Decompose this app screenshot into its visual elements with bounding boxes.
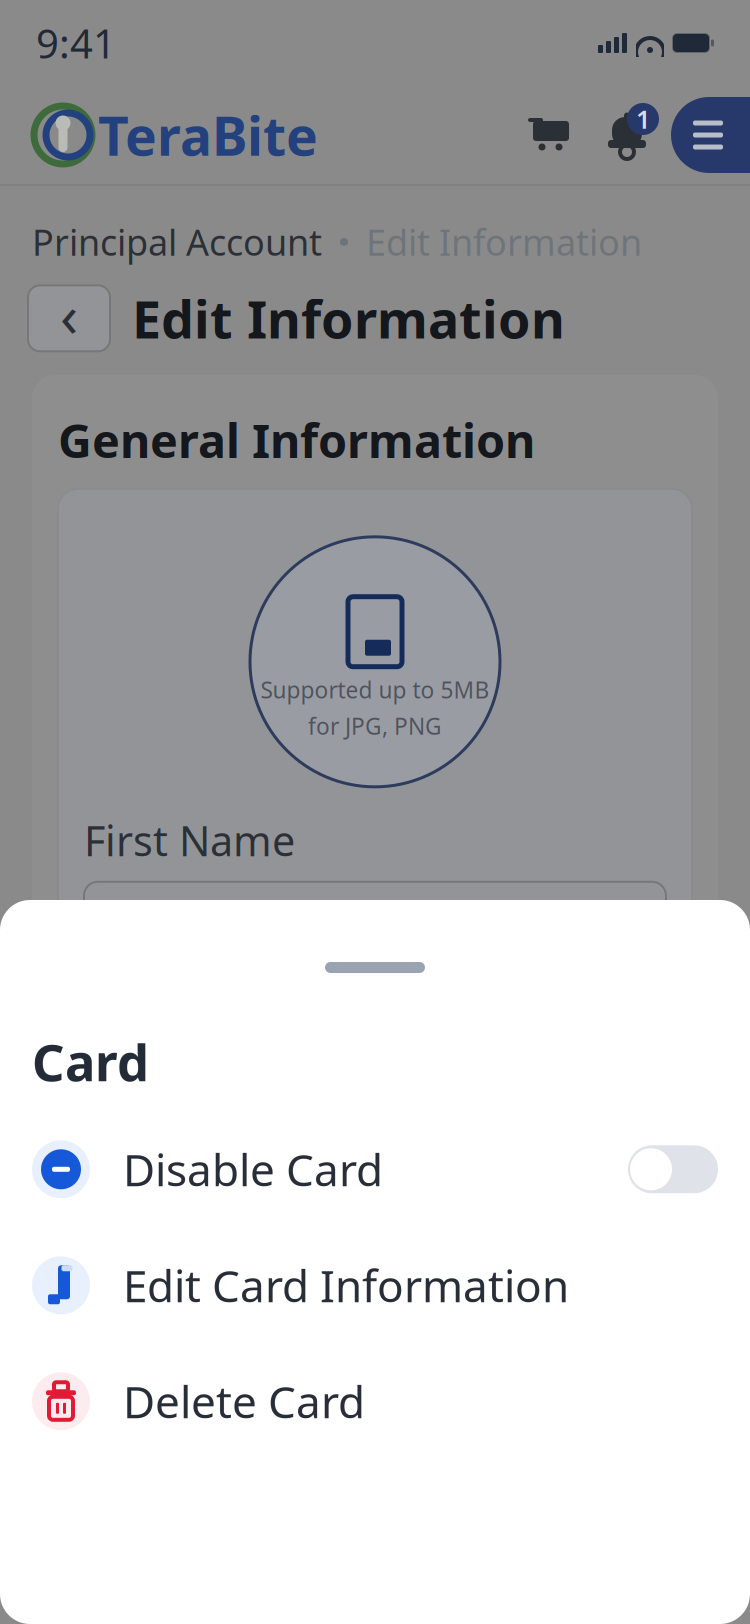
staticText: Edit Information — [132, 284, 565, 353]
staticText: Card — [32, 1028, 149, 1095]
staticText: Supported up to 5MB — [260, 675, 489, 705]
staticText: ‹ — [60, 275, 78, 353]
staticText: General Information — [58, 409, 535, 471]
staticText: Jill — [108, 893, 152, 948]
button[interactable]: Disable Card — [0, 1111, 750, 1227]
button[interactable]: Delete Card — [0, 1343, 750, 1459]
button[interactable]: Notifications — [588, 98, 666, 172]
staticText: Principal Account — [32, 218, 322, 266]
staticText: TeraBite — [98, 100, 318, 170]
staticText: Edit Information — [366, 218, 642, 266]
staticText: First Name — [84, 813, 295, 868]
staticText: Edit Card Information — [123, 1256, 569, 1314]
staticText: Disable Card — [123, 1140, 383, 1198]
button[interactable]: Edit Card Information — [0, 1227, 750, 1343]
staticText: 9:41 — [36, 16, 116, 69]
button[interactable]: Menu — [666, 97, 750, 173]
staticText: for JPG, PNG — [308, 711, 442, 741]
staticText: 1 — [636, 102, 650, 136]
button[interactable]: Cart — [514, 98, 588, 172]
staticText: Delete Card — [123, 1372, 365, 1430]
